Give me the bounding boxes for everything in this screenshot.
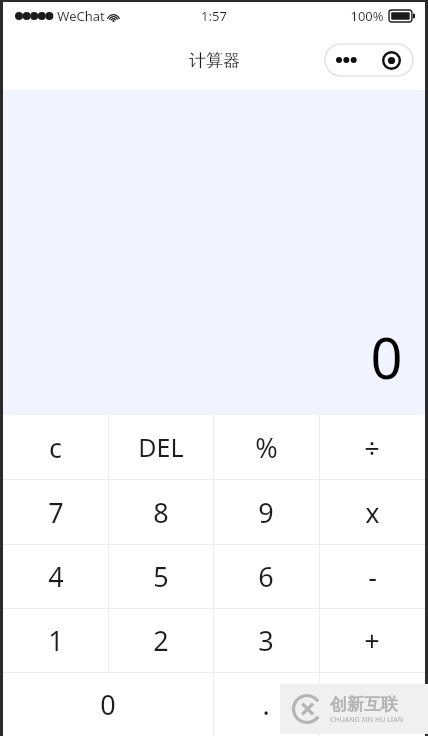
button[interactable]: 2 <box>108 609 213 672</box>
staticText: ÷ <box>364 429 380 466</box>
staticText: 1 <box>48 622 64 659</box>
staticText: 2 <box>153 622 169 659</box>
staticText: % <box>255 429 278 466</box>
staticText: 1:57 <box>201 7 227 25</box>
staticText: 9 <box>258 494 274 531</box>
button[interactable]: . <box>213 673 319 736</box>
button[interactable]: 3 <box>213 609 319 672</box>
staticText: 7 <box>48 494 64 531</box>
button[interactable]: + <box>319 609 425 672</box>
button[interactable]: ÷ <box>319 415 425 479</box>
button[interactable]: 1 <box>3 609 108 672</box>
staticText: 3 <box>258 622 274 659</box>
button[interactable]: 8 <box>108 480 213 544</box>
staticText: + <box>364 622 380 659</box>
staticText: 5 <box>153 558 169 595</box>
staticText: 100% <box>350 7 384 25</box>
staticText: c <box>49 429 62 466</box>
staticText: 8 <box>153 494 169 531</box>
button[interactable]: c <box>3 415 108 479</box>
staticText: DEL <box>138 430 184 464</box>
button[interactable]: % <box>213 415 319 479</box>
button[interactable]: DEL <box>108 415 213 479</box>
staticText: 4 <box>48 558 64 595</box>
button[interactable]: 5 <box>108 545 213 608</box>
staticText: - <box>368 558 377 595</box>
button[interactable]: 7 <box>3 480 108 544</box>
staticText: 0 <box>100 686 116 723</box>
staticText: 0 <box>370 319 403 395</box>
button[interactable]: More <box>326 44 368 76</box>
staticText: 6 <box>258 558 274 595</box>
button[interactable]: 6 <box>213 545 319 608</box>
staticText: WeChat <box>57 7 105 25</box>
button[interactable]: = <box>319 673 425 736</box>
staticText: = <box>364 686 380 723</box>
button[interactable]: - <box>319 545 425 608</box>
staticText: CHUANG XIN HU LIAN <box>330 715 403 725</box>
button[interactable]: x <box>319 480 425 544</box>
button[interactable]: 9 <box>213 480 319 544</box>
staticText: . <box>262 686 270 723</box>
staticText: 创新互联 <box>330 694 398 715</box>
staticText: 计算器 <box>189 50 240 71</box>
button[interactable]: 0 <box>3 673 213 736</box>
button[interactable]: Close mini program <box>370 44 412 76</box>
staticText: x <box>365 494 380 531</box>
button[interactable]: 4 <box>3 545 108 608</box>
button[interactable]: More <box>325 44 413 76</box>
